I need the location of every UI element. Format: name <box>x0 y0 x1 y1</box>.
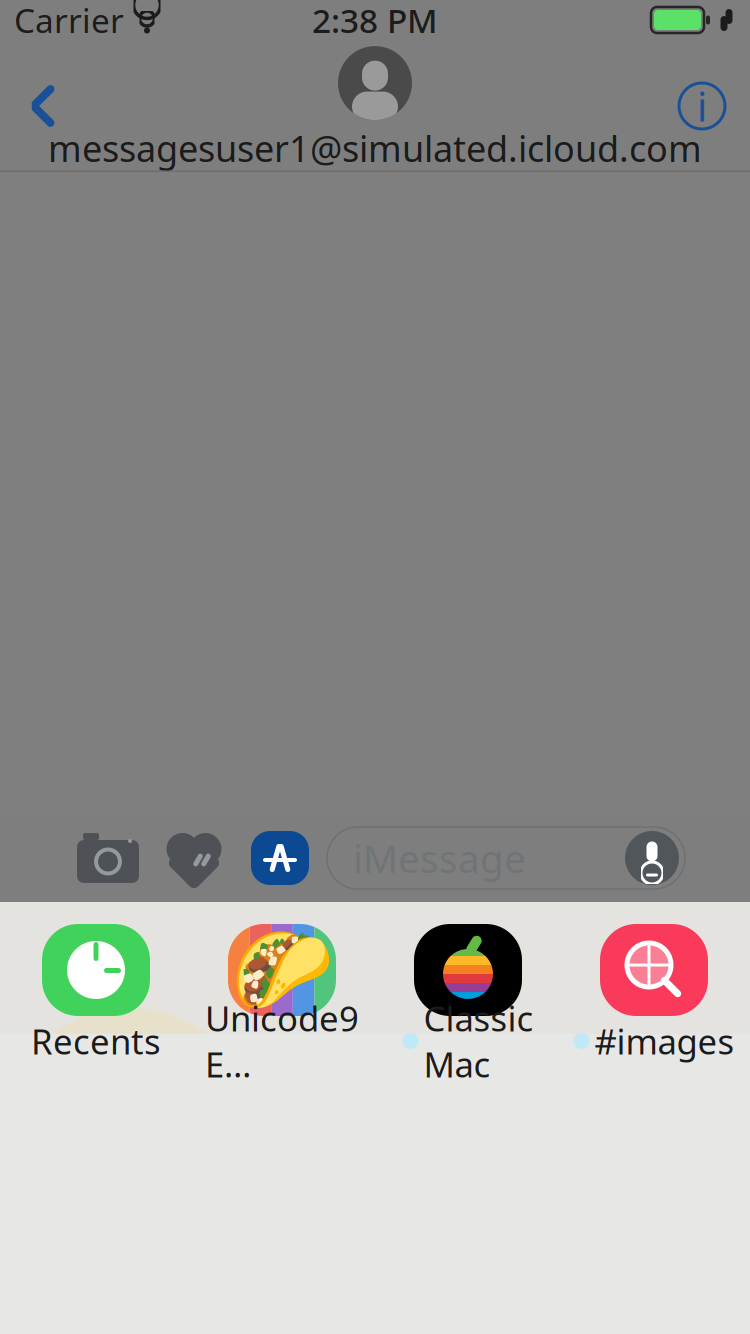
staticText: Carrier <box>14 0 124 42</box>
button[interactable]: App Store <box>237 814 323 902</box>
staticText: i <box>697 79 707 132</box>
staticText: Unicode9 E… <box>205 995 359 1087</box>
button[interactable]: Back <box>8 61 78 151</box>
button[interactable]: Details <box>662 61 742 151</box>
button[interactable]: Digital Touch <box>151 814 237 902</box>
staticText: messagesuser1@simulated.icloud.com <box>48 124 702 172</box>
button[interactable]: iMessage <box>327 827 685 889</box>
button[interactable]: Recents <box>3 911 189 1067</box>
staticText: Recents <box>31 1018 161 1064</box>
staticText: 🌮 <box>230 923 333 1017</box>
button[interactable]: #images <box>561 911 747 1067</box>
staticText: 2:38 PM <box>312 0 438 42</box>
button[interactable]: Classic Mac <box>375 911 561 1067</box>
staticText: #images <box>594 1018 734 1064</box>
button[interactable]: 🌮 <box>189 911 375 1067</box>
button[interactable]: Camera <box>65 814 151 902</box>
staticText: iMessage <box>353 832 526 884</box>
staticText: Classic Mac <box>423 995 533 1087</box>
